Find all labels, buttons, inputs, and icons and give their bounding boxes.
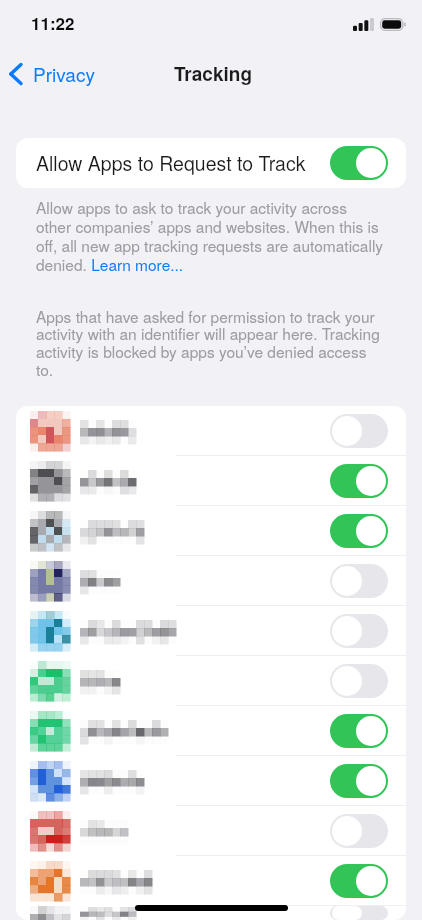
staticText: Allow Apps to Request to Track: [36, 149, 306, 177]
staticText: Tracking: [174, 60, 253, 87]
button[interactable]: Toggle on: [16, 756, 406, 806]
staticText: Allow apps to ask to track your activity…: [36, 196, 386, 275]
button[interactable]: Toggle off: [16, 606, 406, 656]
button[interactable]: Back: [0, 54, 105, 93]
button[interactable]: Toggle off: [330, 564, 388, 598]
button[interactable]: Toggle off: [16, 556, 406, 606]
button[interactable]: Toggle off: [330, 664, 388, 698]
button[interactable]: Toggle on: [330, 514, 388, 548]
button[interactable]: Toggle off: [16, 906, 406, 920]
button[interactable]: Toggle on: [330, 764, 388, 798]
button[interactable]: Toggle off: [330, 614, 388, 648]
other: Back: [9, 63, 22, 85]
button[interactable]: Toggle off: [16, 806, 406, 856]
button[interactable]: Toggle on: [16, 706, 406, 756]
button[interactable]: Toggle on: [16, 456, 406, 506]
button[interactable]: Toggle on: [330, 714, 388, 748]
button[interactable]: Toggle on: [16, 506, 406, 556]
staticText: 11:22: [31, 11, 75, 35]
button[interactable]: Toggle off: [16, 406, 406, 456]
button[interactable]: Toggle on: [330, 146, 388, 180]
button[interactable]: Allow Apps to Request to Track: [16, 138, 406, 188]
button[interactable]: Toggle on: [330, 464, 388, 498]
staticText: Privacy: [33, 60, 95, 87]
button[interactable]: Toggle on: [16, 856, 406, 906]
button[interactable]: Toggle off: [330, 814, 388, 848]
button[interactable]: Toggle on: [330, 864, 388, 898]
button[interactable]: Toggle off: [330, 906, 388, 920]
button[interactable]: Toggle off: [16, 656, 406, 706]
staticText: Apps that have asked for permission to t…: [36, 305, 386, 381]
button[interactable]: Toggle off: [330, 414, 388, 448]
